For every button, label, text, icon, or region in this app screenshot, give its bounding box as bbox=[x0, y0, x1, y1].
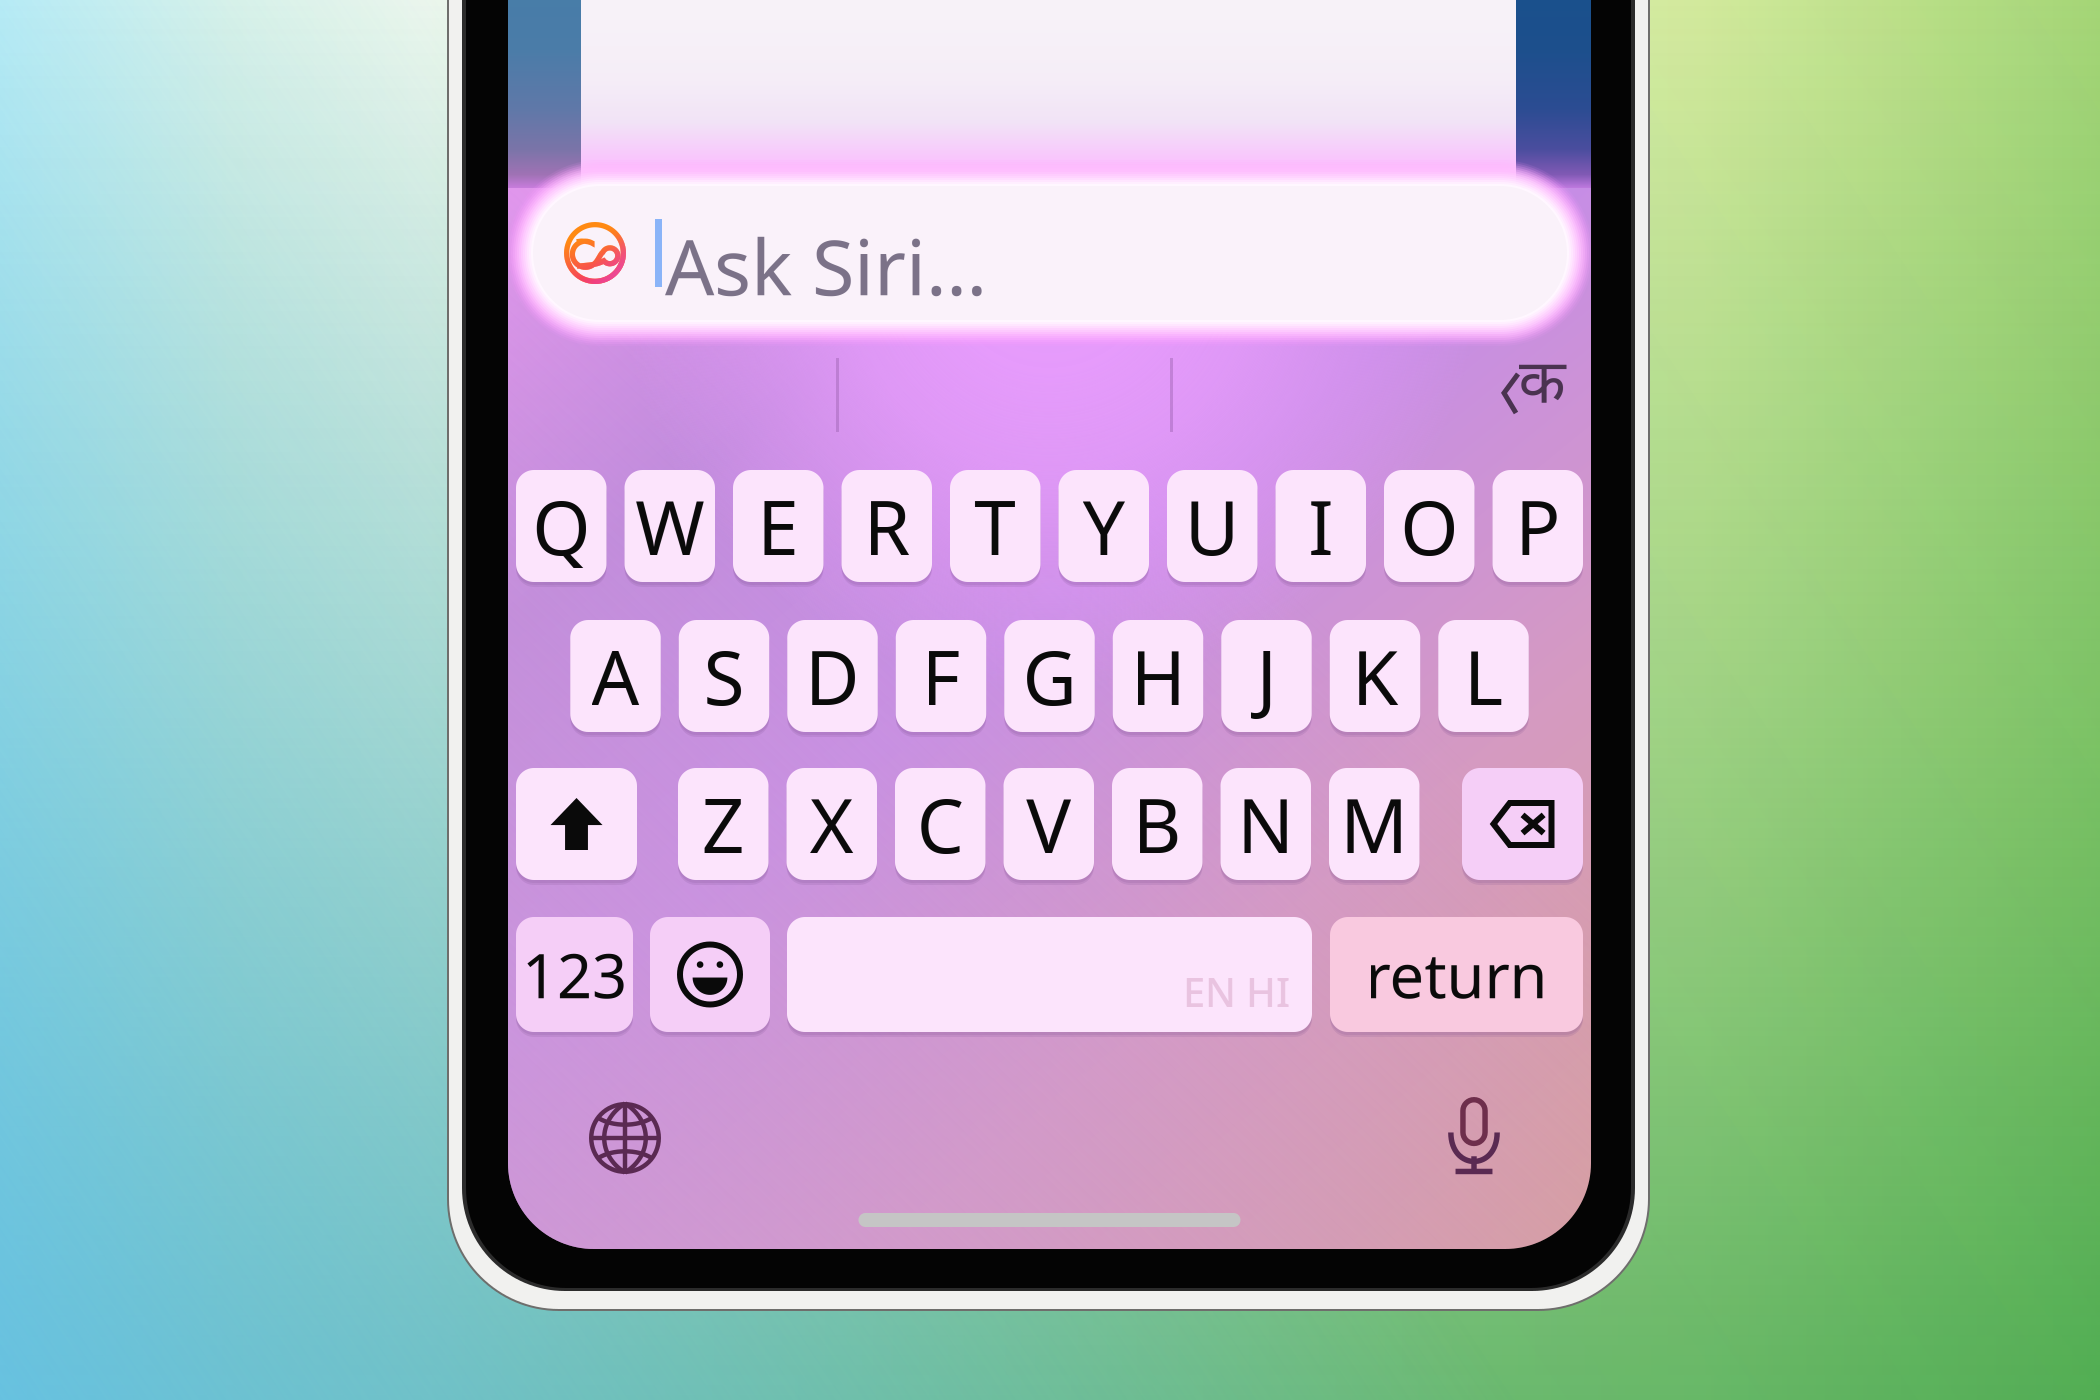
button[interactable]: B bbox=[1112, 768, 1202, 880]
staticText: H bbox=[1130, 626, 1185, 726]
button[interactable]: Shift bbox=[516, 768, 637, 880]
button[interactable]: S bbox=[679, 620, 769, 732]
staticText: R bbox=[864, 476, 910, 576]
staticText: S bbox=[703, 626, 744, 726]
staticText: I bbox=[1308, 476, 1333, 576]
button[interactable]: Q bbox=[516, 470, 606, 582]
staticText: क bbox=[1518, 338, 1565, 420]
button[interactable]: C bbox=[895, 768, 985, 880]
staticText: Z bbox=[702, 774, 745, 874]
button[interactable]: I bbox=[1275, 470, 1366, 582]
staticText: K bbox=[1352, 626, 1398, 726]
staticText: EN HI bbox=[1183, 965, 1290, 1018]
staticText: E bbox=[757, 476, 799, 576]
button[interactable]: M bbox=[1329, 768, 1419, 880]
staticText: D bbox=[805, 626, 860, 726]
staticText: Q bbox=[532, 476, 590, 576]
staticText: Y bbox=[1083, 476, 1125, 576]
button[interactable]: Dictate bbox=[1448, 1097, 1500, 1175]
staticText: U bbox=[1185, 476, 1240, 576]
button[interactable]: O bbox=[1384, 470, 1474, 582]
button[interactable]: Delete bbox=[1462, 768, 1583, 880]
button[interactable]: L bbox=[1438, 620, 1529, 732]
staticText: T bbox=[974, 476, 1016, 576]
button[interactable]: N bbox=[1220, 768, 1311, 880]
button[interactable]: Space bbox=[787, 917, 1312, 1032]
staticText: W bbox=[635, 476, 704, 576]
staticText: L bbox=[1464, 626, 1503, 726]
button[interactable]: A bbox=[570, 620, 661, 732]
button[interactable]: W bbox=[624, 470, 715, 582]
staticText: O bbox=[1400, 476, 1458, 576]
staticText: 123 bbox=[522, 934, 627, 1015]
staticText: N bbox=[1237, 774, 1294, 874]
button[interactable]: Y bbox=[1058, 470, 1149, 582]
button[interactable]: 123 bbox=[516, 917, 633, 1032]
staticText: A bbox=[591, 626, 639, 726]
button[interactable]: R bbox=[841, 470, 932, 582]
button[interactable]: F bbox=[896, 620, 986, 732]
button[interactable]: E bbox=[733, 470, 823, 582]
staticText: B bbox=[1133, 774, 1182, 874]
staticText: Ask Siri… bbox=[665, 214, 987, 317]
button[interactable]: Z bbox=[678, 768, 768, 880]
staticText: C bbox=[917, 774, 964, 874]
button[interactable]: K bbox=[1330, 620, 1420, 732]
button[interactable]: X bbox=[786, 768, 877, 880]
button[interactable]: Emoji bbox=[650, 917, 770, 1032]
button[interactable]: G bbox=[1004, 620, 1095, 732]
staticText: return bbox=[1365, 934, 1547, 1015]
staticText: G bbox=[1022, 626, 1076, 726]
button[interactable]: Next keyboard bbox=[589, 1102, 661, 1174]
staticText: J bbox=[1256, 626, 1276, 726]
button[interactable]: U bbox=[1167, 470, 1257, 582]
button[interactable]: J bbox=[1221, 620, 1312, 732]
button[interactable]: D bbox=[787, 620, 878, 732]
staticText: F bbox=[921, 626, 960, 726]
staticText: X bbox=[810, 774, 854, 874]
button[interactable]: T bbox=[950, 470, 1040, 582]
button[interactable]: return bbox=[1330, 917, 1583, 1032]
staticText: M bbox=[1340, 774, 1408, 874]
staticText: P bbox=[1515, 476, 1560, 576]
button[interactable]: V bbox=[1003, 768, 1094, 880]
button[interactable]: P bbox=[1492, 470, 1583, 582]
button[interactable]: H bbox=[1113, 620, 1203, 732]
staticText: V bbox=[1026, 774, 1071, 874]
